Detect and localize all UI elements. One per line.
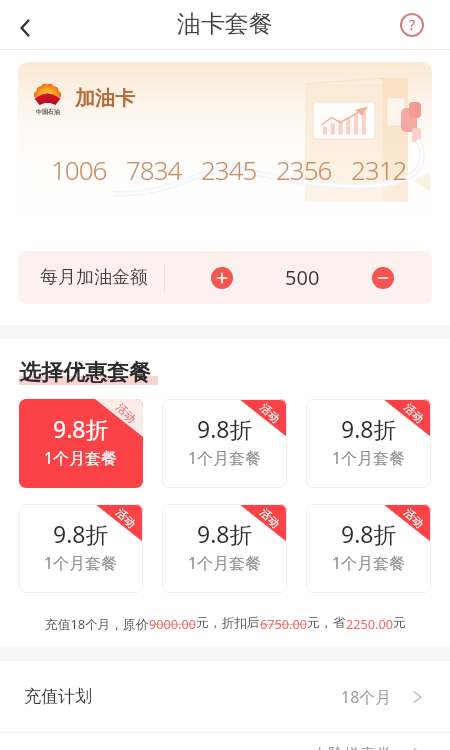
staticText: 9000.00 <box>149 615 196 632</box>
staticText: 9.8折 <box>341 413 397 444</box>
staticText: 1个月套餐 <box>188 552 262 574</box>
staticText: 9.8折 <box>197 518 253 549</box>
staticText: 9.8折 <box>341 518 397 549</box>
staticText: 500 <box>285 264 320 291</box>
staticText: 2312 <box>351 152 407 187</box>
button[interactable]: 9.8折 <box>306 399 431 488</box>
staticText: 2345 <box>201 152 257 187</box>
staticText: 9.8折 <box>53 518 109 549</box>
staticText: 充值计划 <box>24 686 92 707</box>
staticText: 活动 <box>257 505 283 531</box>
button[interactable]: Help <box>397 10 427 40</box>
staticText: 油卡套餐 <box>177 9 273 39</box>
staticText: 1个月套餐 <box>44 447 118 469</box>
staticText: 2250.00 <box>346 615 393 632</box>
staticText: 每月加油金额 <box>40 266 148 289</box>
staticText: 元，折扣后 <box>196 615 260 631</box>
staticText: 6750.00 <box>260 615 307 632</box>
staticText: 中国石油 <box>36 108 60 116</box>
staticText: 1个月套餐 <box>44 552 118 574</box>
staticText: 1个月套餐 <box>332 552 406 574</box>
staticText: 1个月套餐 <box>188 447 262 469</box>
staticText: ? <box>409 15 416 34</box>
staticText: 选择优惠套餐 <box>19 359 151 385</box>
staticText: 活动 <box>113 505 139 531</box>
button[interactable]: 上阶梯率类 <box>0 733 450 750</box>
button[interactable]: 9.8折 <box>19 504 143 593</box>
staticText: 活动 <box>113 400 139 426</box>
button[interactable]: 充值计划 <box>0 661 450 732</box>
staticText: 18个月 <box>341 686 392 708</box>
staticText: 7834 <box>126 152 182 187</box>
staticText: 9.8折 <box>197 413 253 444</box>
button[interactable]: 9.8折 <box>162 504 287 593</box>
button[interactable]: 中国石油 <box>18 62 432 229</box>
button[interactable]: Decrease <box>372 267 394 289</box>
staticText: 充值18个月，原价 <box>45 615 149 632</box>
button[interactable]: 9.8折 <box>306 504 431 593</box>
staticText: 1个月套餐 <box>332 447 406 469</box>
button[interactable]: Increase <box>211 267 233 289</box>
staticText: 元，省 <box>307 615 346 631</box>
staticText: 活动 <box>401 505 427 531</box>
staticText: 活动 <box>257 400 283 426</box>
button[interactable]: 9.8折 <box>162 399 287 488</box>
staticText: 1006 <box>51 152 107 187</box>
button[interactable]: Back <box>6 5 46 45</box>
staticText: 上阶梯率类 <box>312 745 392 750</box>
staticText: 活动 <box>401 400 427 426</box>
button[interactable]: 9.8折 <box>19 399 143 488</box>
staticText: 2356 <box>276 152 332 187</box>
staticText: 元 <box>393 615 406 631</box>
staticText: 9.8折 <box>53 413 109 444</box>
staticText: 加油卡 <box>75 86 135 111</box>
